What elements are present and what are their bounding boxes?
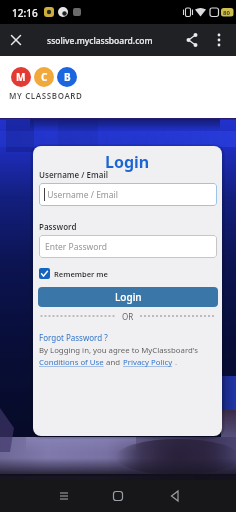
button[interactable]: Remember me bbox=[39, 268, 108, 279]
button[interactable]: Forgot Password ? bbox=[39, 332, 108, 343]
staticText: Enter Password bbox=[45, 241, 108, 253]
staticText: Password bbox=[39, 221, 77, 232]
staticText: By Logging in, you agree to MyClassboard… bbox=[39, 345, 199, 356]
staticText: M bbox=[16, 70, 26, 84]
button[interactable] bbox=[165, 486, 185, 506]
staticText: OR bbox=[122, 311, 134, 322]
staticText: ssolive.myclassboard.com bbox=[47, 35, 153, 47]
staticText: Login bbox=[105, 151, 150, 173]
staticText: Login bbox=[115, 290, 142, 304]
button[interactable]: Privacy Policy bbox=[123, 357, 173, 368]
button[interactable]: Username / Email bbox=[39, 183, 217, 206]
staticText: and bbox=[104, 357, 123, 368]
staticText: 12:16 bbox=[12, 6, 38, 20]
staticText: MY CLASSBOARD bbox=[9, 90, 83, 101]
staticText: C bbox=[41, 70, 48, 84]
staticText: Username / Email bbox=[45, 189, 118, 201]
button[interactable] bbox=[54, 486, 74, 506]
staticText: Remember me bbox=[54, 269, 108, 279]
button[interactable] bbox=[210, 30, 230, 50]
button[interactable] bbox=[6, 30, 26, 50]
staticText: . bbox=[173, 357, 178, 368]
staticText: 80 bbox=[223, 9, 230, 17]
button[interactable]: Conditions of Use bbox=[39, 357, 104, 368]
button[interactable] bbox=[182, 30, 202, 50]
button[interactable]: Login bbox=[38, 287, 218, 307]
staticText: B bbox=[64, 70, 71, 84]
staticText: Username / Email bbox=[39, 169, 108, 180]
button[interactable]: Enter Password bbox=[39, 235, 217, 258]
button[interactable] bbox=[108, 486, 128, 506]
